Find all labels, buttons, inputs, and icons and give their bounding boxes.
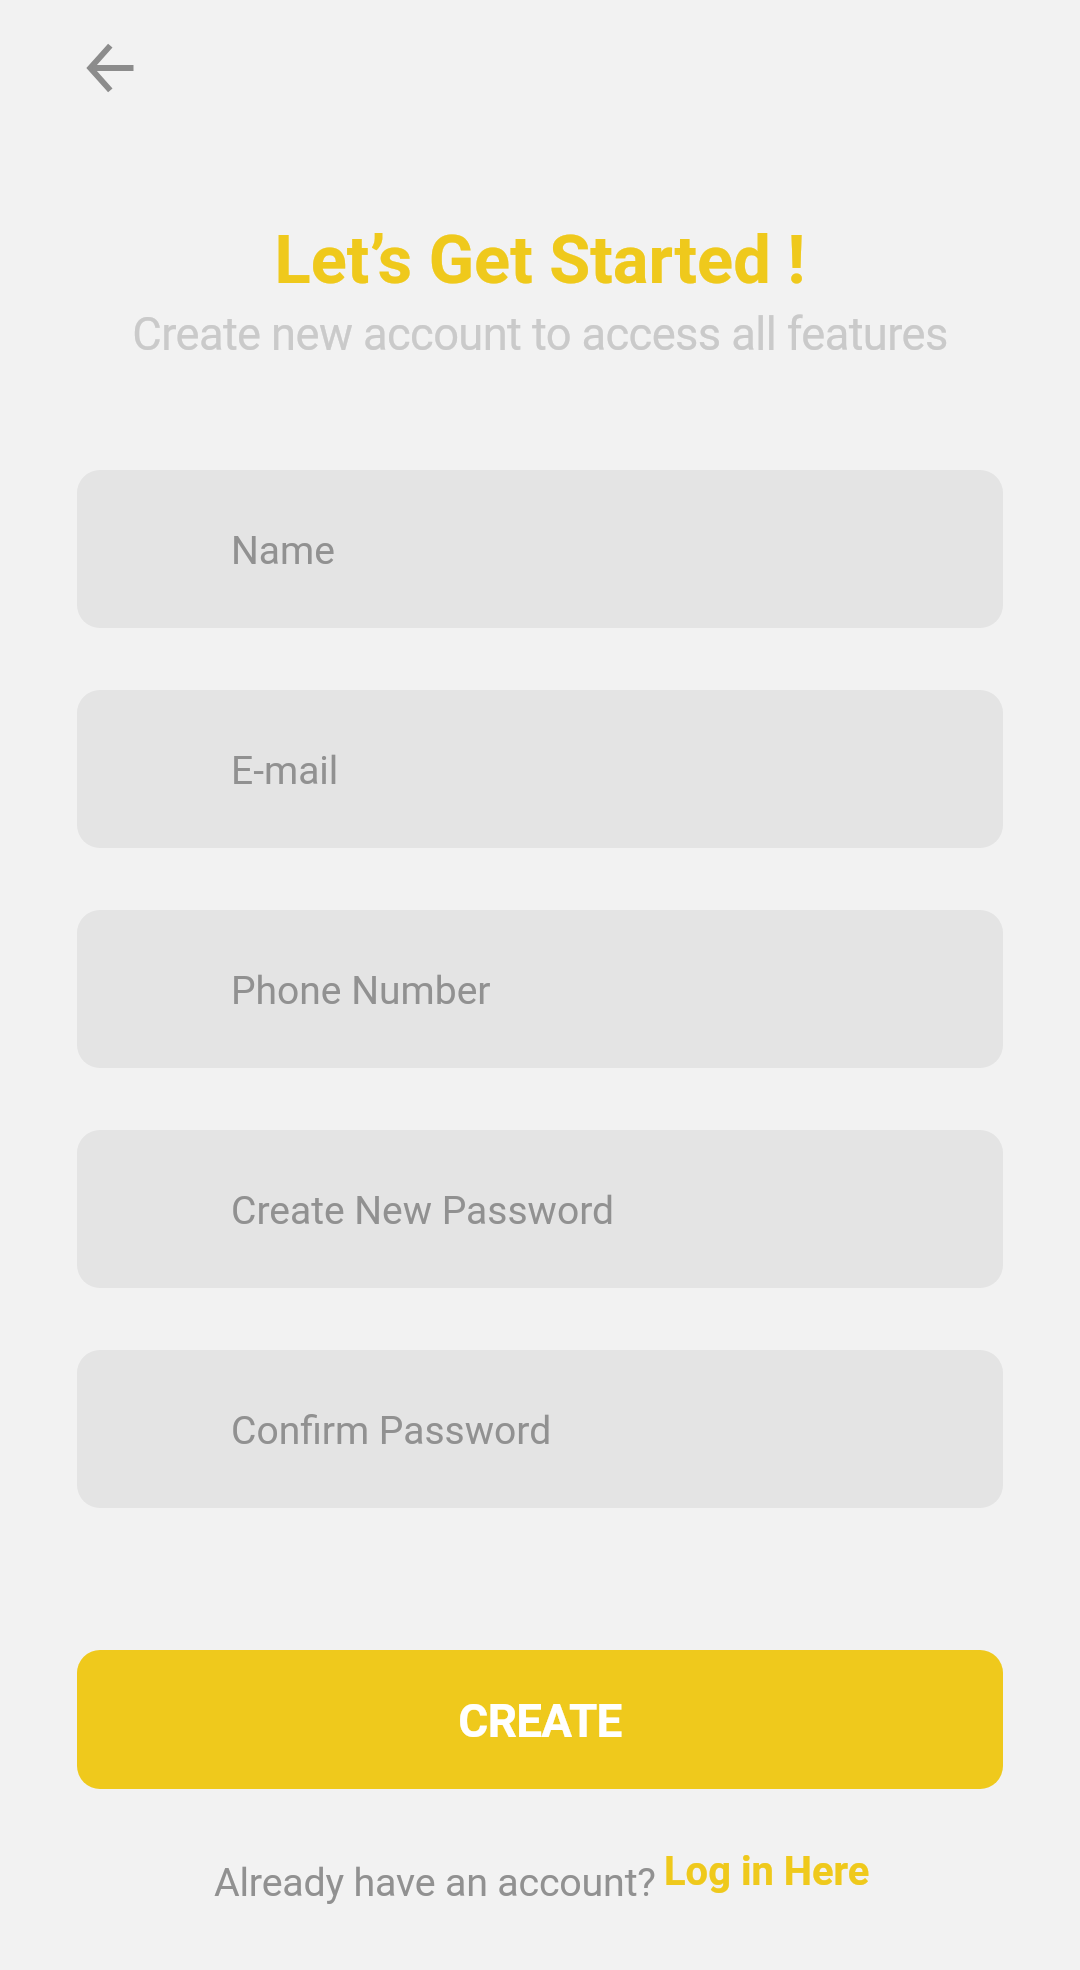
- button[interactable]: CREATE: [77, 1650, 1003, 1789]
- staticText: Confirm Password: [231, 1408, 552, 1454]
- staticText: Create New Password: [231, 1188, 614, 1234]
- button[interactable]: Create New Password: [77, 1130, 1003, 1288]
- staticText: Already have an account?: [214, 1859, 656, 1905]
- staticText: Phone Number: [231, 968, 491, 1014]
- button[interactable]: Phone Number: [77, 910, 1003, 1068]
- button[interactable]: E-mail: [77, 690, 1003, 848]
- staticText: E-mail: [231, 748, 339, 794]
- button[interactable]: Back: [42, 22, 134, 114]
- staticText: Let’s Get Started !: [0, 221, 1080, 299]
- button[interactable]: Log in Here: [656, 1848, 873, 1895]
- staticText: CREATE: [458, 1694, 622, 1748]
- button[interactable]: Confirm Password: [77, 1350, 1003, 1508]
- staticText: Create new account to access all feature…: [0, 308, 1080, 361]
- staticText: Log in Here: [664, 1848, 870, 1895]
- button[interactable]: Name: [77, 470, 1003, 628]
- staticText: Name: [231, 528, 335, 574]
